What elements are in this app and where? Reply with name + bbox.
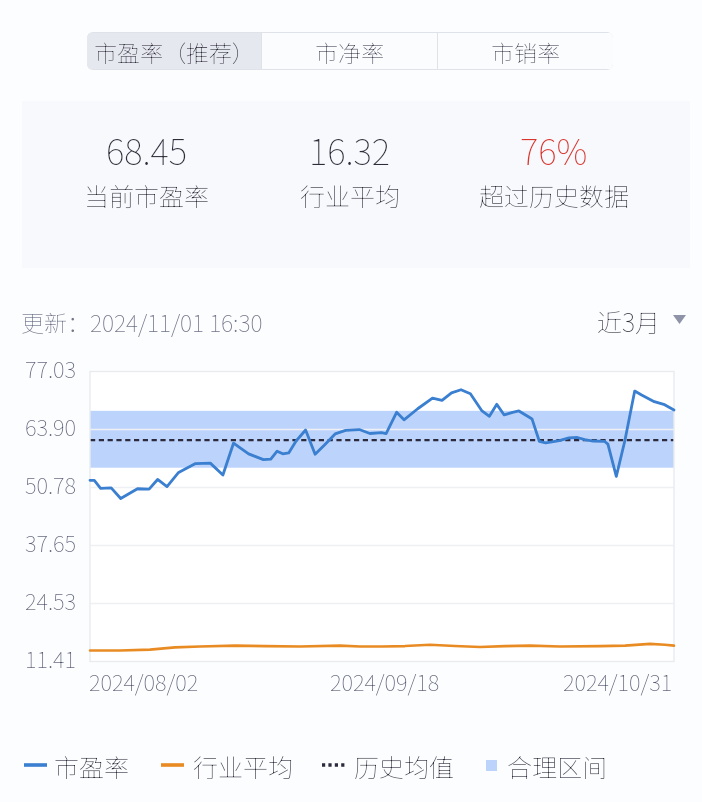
staticText: 2024/09/18 xyxy=(330,665,440,697)
staticText: 68.45 xyxy=(106,124,188,175)
staticText: 77.03 xyxy=(25,352,76,384)
staticText: 市销率 xyxy=(491,35,560,68)
button[interactable]: 16.32 xyxy=(248,101,452,268)
staticText: 更新：2024/11/01 16:30 xyxy=(21,305,263,338)
staticText: 行业平均 xyxy=(193,748,294,782)
staticText: 历史均值 xyxy=(354,748,455,782)
staticText: 16.32 xyxy=(309,124,391,175)
staticText: 合理区间 xyxy=(507,748,608,782)
staticText: 市净率 xyxy=(315,35,384,68)
staticText: 2024/10/31 xyxy=(563,665,673,697)
button[interactable]: 行业平均 xyxy=(153,748,254,782)
staticText: 63.90 xyxy=(25,410,76,442)
button[interactable]: 合理区间 xyxy=(478,748,579,782)
button[interactable]: 市净率 xyxy=(262,33,437,69)
button[interactable]: 市盈率（推荐） xyxy=(87,33,261,69)
button[interactable]: 近3月 xyxy=(597,303,686,335)
button[interactable]: 68.45 xyxy=(45,101,248,268)
staticText: 76% xyxy=(520,124,588,175)
staticText: 24.53 xyxy=(25,584,76,616)
other: Select time range xyxy=(673,315,686,324)
staticText: 市盈率 xyxy=(54,748,130,782)
staticText: 市盈率（推荐） xyxy=(94,35,255,68)
button[interactable]: 历史均值 xyxy=(314,748,415,782)
staticText: 当前市盈率 xyxy=(84,177,210,213)
staticText: 近3月 xyxy=(597,303,661,335)
staticText: 37.65 xyxy=(25,526,76,558)
button[interactable]: 市盈率 xyxy=(16,748,92,782)
button[interactable]: 市销率 xyxy=(438,33,613,69)
staticText: 11.41 xyxy=(25,642,76,674)
staticText: 2024/08/02 xyxy=(89,665,199,697)
staticText: 50.78 xyxy=(25,468,76,500)
staticText: 行业平均 xyxy=(300,177,401,213)
staticText: 超过历史数据 xyxy=(479,177,630,213)
button[interactable]: 76% xyxy=(452,101,656,268)
